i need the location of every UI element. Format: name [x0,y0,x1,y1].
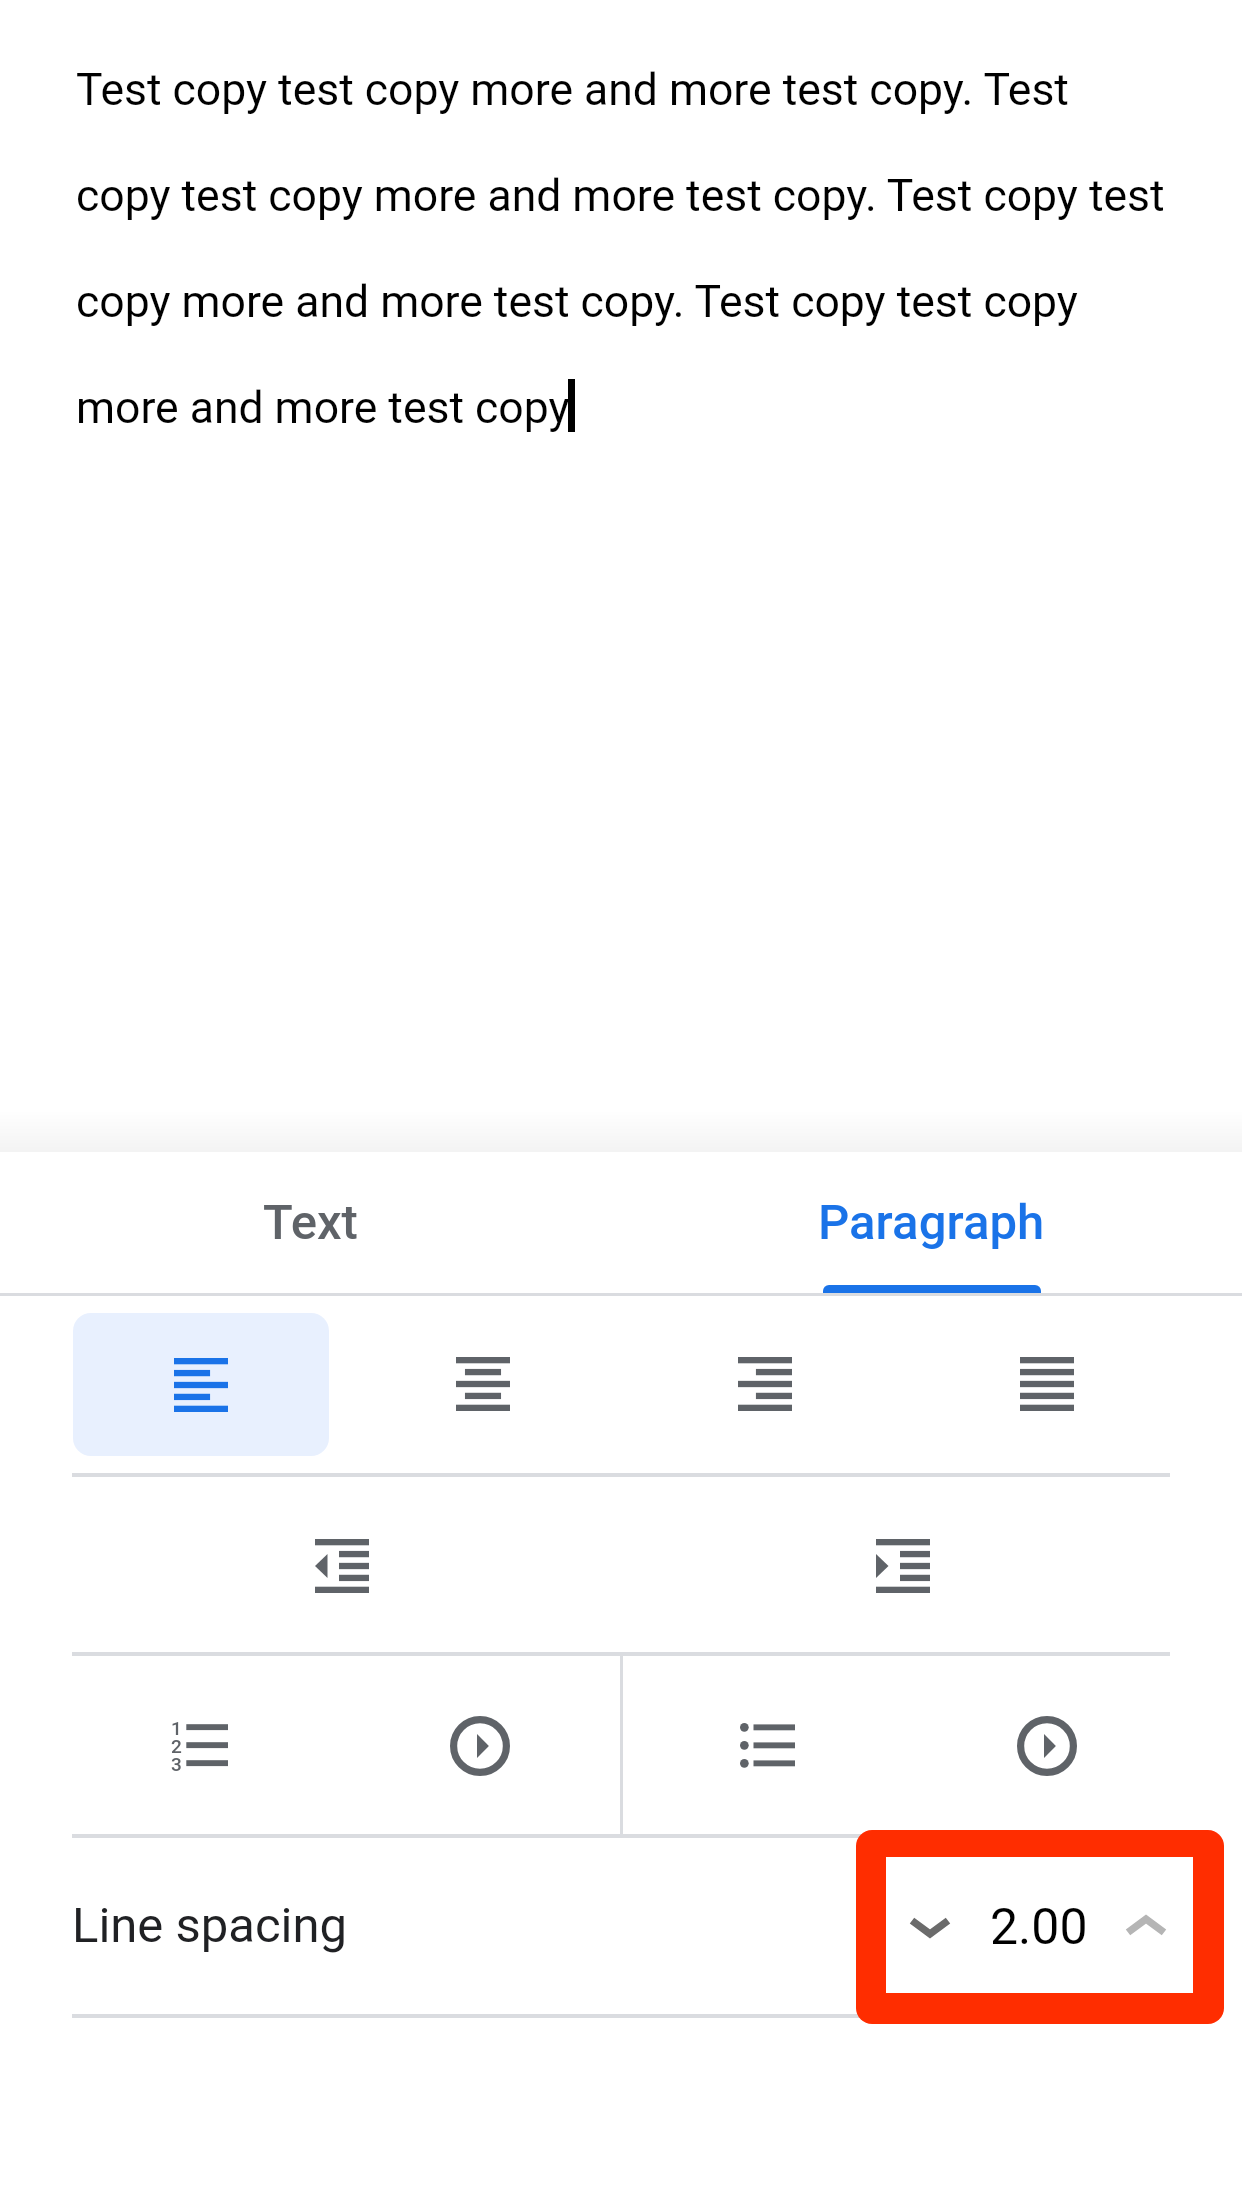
button[interactable]: Decrease line spacing [886,1859,974,1995]
button[interactable]: Justify [977,1314,1117,1454]
button[interactable]: Text [0,1152,621,1293]
staticText: 2.00 [990,1898,1088,1957]
button[interactable]: Line spacing [0,1838,856,2018]
button[interactable]: Numbered list options [410,1676,550,1816]
button[interactable]: Numbered list [129,1674,269,1814]
staticText: Test copy test copy more and more test c… [76,64,1171,434]
button[interactable]: Bulleted list [697,1675,837,1815]
staticText: 3 [171,1753,182,1775]
button[interactable]: Decrease indent [272,1496,412,1636]
staticText: 1 [171,1717,182,1739]
button[interactable]: Align center [413,1314,553,1454]
button[interactable]: Paragraph [621,1152,1242,1293]
staticText: Paragraph [818,1194,1045,1251]
button[interactable]: Increase line spacing [1102,1857,1190,1993]
button[interactable]: Align right [695,1314,835,1454]
button[interactable]: Align left [73,1313,329,1456]
staticText: 2 [171,1735,182,1757]
button[interactable]: Increase indent [833,1496,973,1636]
staticText: Text [263,1194,358,1251]
button[interactable]: Bulleted list options [977,1676,1117,1816]
staticText: Line spacing [72,1897,348,1954]
